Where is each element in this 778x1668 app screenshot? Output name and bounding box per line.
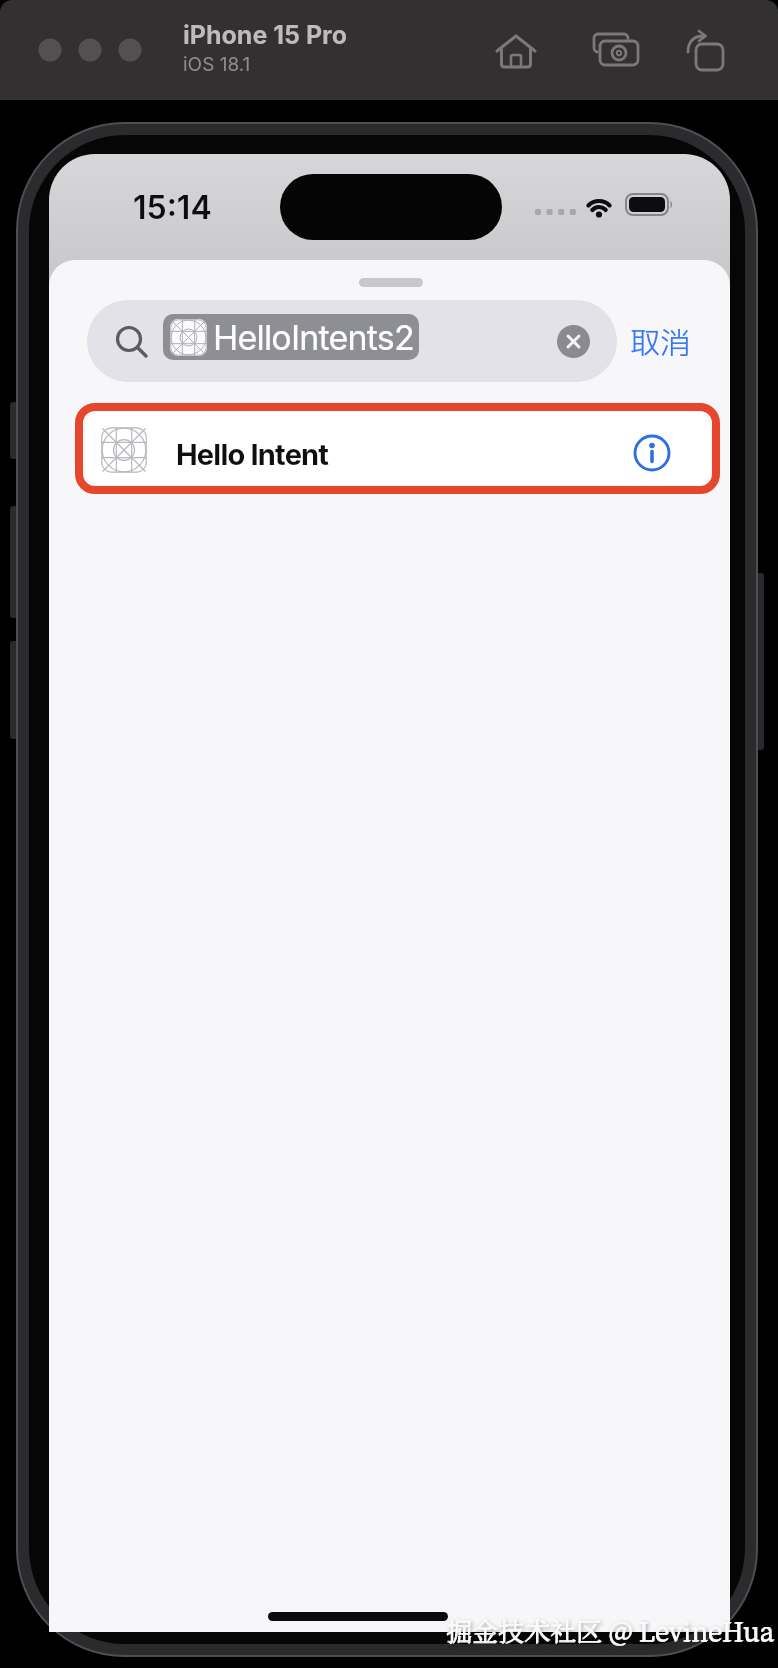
staticText: 15:14 bbox=[133, 188, 212, 222]
staticText: iOS 18.1 bbox=[183, 53, 251, 76]
staticText: 掘金技术社区 @ LevineHua bbox=[447, 1611, 775, 1648]
button[interactable] bbox=[678, 28, 734, 76]
staticText: 掘金技术社区 @ LevineHua bbox=[446, 1612, 774, 1649]
button[interactable] bbox=[557, 325, 590, 358]
staticText: Hello Intent bbox=[176, 437, 329, 472]
staticText: HelloIntents2 bbox=[213, 317, 414, 358]
staticText: iPhone 15 Pro bbox=[183, 20, 348, 50]
button[interactable] bbox=[87, 300, 617, 382]
staticText: 取消 bbox=[630, 322, 690, 360]
button[interactable] bbox=[586, 30, 648, 74]
button[interactable] bbox=[486, 30, 546, 74]
button[interactable] bbox=[86, 412, 710, 485]
button[interactable]: 取消 bbox=[630, 322, 702, 360]
staticText: 掘金技术社区 @ LevineHua bbox=[446, 1611, 774, 1648]
